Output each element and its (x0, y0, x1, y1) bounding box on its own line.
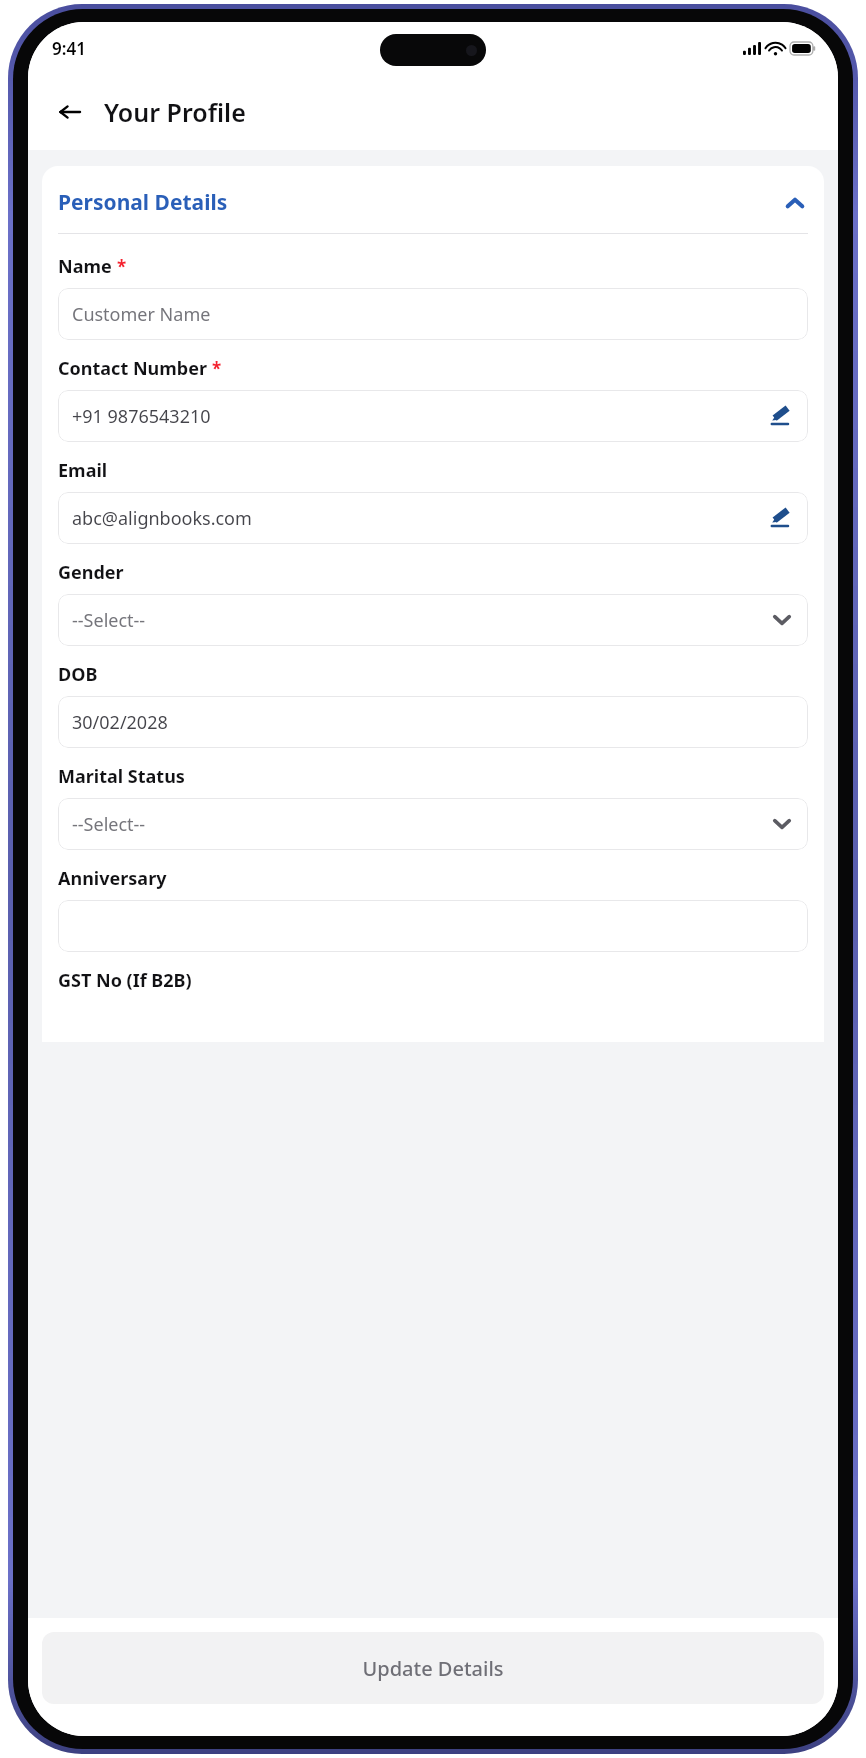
staticText: abc@alignbooks.com (72, 506, 768, 531)
staticText: Marital Status (58, 764, 185, 789)
button[interactable] (58, 900, 808, 952)
staticText: Email (58, 458, 108, 483)
staticText: Personal Details (58, 188, 782, 217)
other: Open dropdown (770, 608, 794, 632)
staticText: 9:41 (52, 37, 86, 60)
staticText: * (212, 357, 222, 380)
button[interactable]: --Select-- (58, 798, 808, 850)
staticText: Anniversary (58, 866, 167, 891)
other: Collapse section (782, 190, 808, 216)
button[interactable]: Update Details (42, 1632, 824, 1704)
staticText: Gender (58, 560, 124, 585)
button[interactable]: --Select-- (58, 594, 808, 646)
button[interactable]: Personal Details (58, 188, 808, 217)
button[interactable]: Customer Name (58, 288, 808, 340)
other: Open dropdown (770, 812, 794, 836)
staticText: --Select-- (72, 812, 770, 837)
staticText: * (117, 255, 127, 278)
staticText: Contact Number (58, 356, 207, 381)
staticText: Update Details (362, 1655, 504, 1682)
staticText: Your Profile (104, 95, 246, 129)
staticText: 30/02/2028 (72, 710, 794, 735)
staticText: GST No (If B2B) (58, 968, 192, 993)
button[interactable]: abc@alignbooks.com (58, 492, 808, 544)
staticText: Customer Name (72, 302, 794, 327)
button[interactable]: +91 9876543210 (58, 390, 808, 442)
other: Edit (768, 505, 794, 531)
staticText: +91 9876543210 (72, 404, 768, 429)
button[interactable]: Back (50, 92, 90, 132)
staticText: --Select-- (72, 608, 770, 633)
other: Edit (768, 403, 794, 429)
staticText: Name (58, 254, 112, 279)
button[interactable]: 30/02/2028 (58, 696, 808, 748)
staticText: DOB (58, 662, 98, 687)
